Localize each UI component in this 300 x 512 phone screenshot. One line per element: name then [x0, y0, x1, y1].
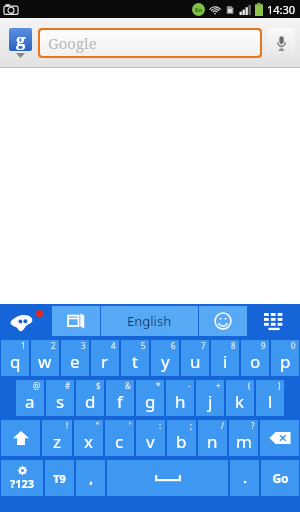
- button[interactable]: 2: [31, 340, 59, 376]
- staticText: 0: [291, 340, 296, 351]
- staticText: 6: [171, 340, 176, 351]
- staticText: y: [161, 350, 170, 373]
- button[interactable]: +: [196, 380, 224, 416]
- button[interactable]: ,: [76, 460, 105, 496]
- button[interactable]: Google: [40, 30, 260, 56]
- staticText: n: [207, 430, 218, 453]
- button[interactable]: 6: [151, 340, 179, 376]
- staticText: 2: [51, 340, 56, 351]
- button[interactable]: English: [101, 306, 198, 336]
- button[interactable]: 8: [211, 340, 239, 376]
- staticText: ': [129, 420, 131, 431]
- button[interactable]: ': [105, 420, 134, 456]
- staticText: j: [208, 390, 213, 413]
- staticText: a: [25, 390, 35, 413]
- button[interactable]: #: [46, 380, 74, 416]
- staticText: ): [278, 380, 281, 391]
- button[interactable]: -: [166, 380, 194, 416]
- staticText: -: [188, 380, 191, 391]
- button[interactable]: T9: [45, 460, 74, 496]
- button[interactable]: /: [198, 420, 227, 456]
- button[interactable]: Voice search: [267, 28, 295, 58]
- button[interactable]: 7: [181, 340, 209, 376]
- staticText: Go: [272, 470, 289, 486]
- staticText: (: [248, 380, 251, 391]
- button[interactable]: 0: [271, 340, 299, 376]
- staticText: l: [268, 390, 273, 413]
- staticText: t: [132, 350, 139, 373]
- staticText: ?: [251, 420, 255, 431]
- staticText: w: [38, 350, 52, 373]
- button[interactable]: Keyboard layouts: [248, 304, 300, 338]
- staticText: T9: [53, 471, 66, 486]
- staticText: z: [53, 430, 61, 453]
- staticText: h: [175, 390, 186, 413]
- button[interactable]: ": [74, 420, 103, 456]
- staticText: ,: [89, 469, 93, 487]
- button[interactable]: Backspace: [260, 420, 299, 456]
- staticText: 14:30: [267, 2, 296, 17]
- staticText: ;: [190, 420, 193, 431]
- staticText: m: [236, 430, 252, 453]
- button[interactable]: Space: [107, 460, 228, 496]
- button[interactable]: Emoji: [199, 306, 247, 336]
- button[interactable]: 5: [121, 340, 149, 376]
- staticText: @: [33, 380, 41, 391]
- staticText: i: [223, 350, 228, 373]
- button[interactable]: @: [16, 380, 44, 416]
- staticText: r: [101, 350, 109, 373]
- staticText: u: [190, 350, 201, 373]
- staticText: 4: [111, 340, 116, 351]
- button[interactable]: 3: [61, 340, 89, 376]
- button[interactable]: $: [76, 380, 104, 416]
- staticText: +: [216, 380, 221, 391]
- staticText: g: [16, 28, 26, 51]
- staticText: .: [243, 469, 247, 487]
- staticText: ": [96, 420, 100, 431]
- staticText: o: [250, 350, 261, 373]
- staticText: 3: [81, 340, 86, 351]
- button[interactable]: Keyboard app: [0, 304, 52, 338]
- staticText: 8: [231, 340, 236, 351]
- staticText: c: [115, 430, 124, 453]
- staticText: #: [65, 380, 71, 391]
- button[interactable]: ?: [229, 420, 258, 456]
- staticText: p: [280, 350, 291, 373]
- staticText: k: [235, 390, 245, 413]
- staticText: En: [195, 6, 203, 14]
- button[interactable]: Symbols and settings: [1, 460, 43, 496]
- button[interactable]: Resize keyboard: [52, 306, 100, 336]
- button[interactable]: &: [106, 380, 134, 416]
- button[interactable]: (: [226, 380, 254, 416]
- staticText: /: [221, 420, 224, 431]
- staticText: 1: [21, 340, 26, 351]
- staticText: :: [159, 420, 162, 431]
- button[interactable]: .: [230, 460, 259, 496]
- staticText: q: [10, 350, 21, 373]
- staticText: e: [70, 350, 80, 373]
- staticText: v: [146, 430, 155, 453]
- staticText: ?123: [10, 476, 35, 491]
- button[interactable]: 9: [241, 340, 269, 376]
- button[interactable]: !: [42, 420, 72, 456]
- button[interactable]: *: [136, 380, 164, 416]
- button[interactable]: 4: [91, 340, 119, 376]
- staticText: 5: [141, 340, 146, 351]
- staticText: x: [84, 430, 93, 453]
- button[interactable]: ;: [167, 420, 196, 456]
- staticText: $: [96, 380, 101, 391]
- button[interactable]: Go: [261, 460, 299, 496]
- button[interactable]: ): [256, 380, 284, 416]
- button[interactable]: 1: [1, 340, 29, 376]
- button[interactable]: :: [136, 420, 165, 456]
- button[interactable]: Shift: [1, 420, 40, 456]
- staticText: Google: [48, 33, 97, 53]
- staticText: b: [176, 430, 187, 453]
- staticText: English: [127, 312, 172, 330]
- staticText: f: [117, 390, 123, 413]
- staticText: s: [56, 390, 65, 413]
- staticText: !: [66, 420, 69, 431]
- staticText: &: [125, 380, 131, 391]
- staticText: 9: [261, 340, 266, 351]
- button[interactable]: Search provider: [5, 28, 35, 58]
